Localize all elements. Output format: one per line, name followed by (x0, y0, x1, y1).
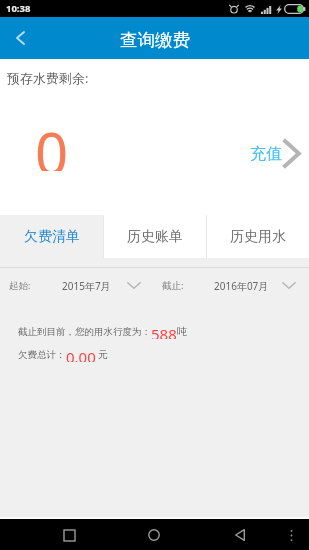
staticText: 截止到目前，您的用水行度为： (18, 326, 151, 338)
staticText: 欠费总计： (18, 349, 66, 361)
staticText: 588 (151, 324, 177, 339)
staticText: 充值 (250, 144, 282, 164)
button[interactable]: Recent apps (54, 520, 84, 550)
staticText: 2015年7月 (62, 279, 111, 293)
staticText: 起始: (9, 279, 31, 292)
staticText: 10:38 (6, 2, 31, 15)
staticText: 历史用水 (230, 228, 286, 246)
staticText: 0.00 (66, 347, 96, 362)
button[interactable]: 充值 (250, 138, 302, 169)
staticText: 截止: (162, 279, 184, 292)
button[interactable]: 历史用水 (206, 215, 309, 258)
button[interactable]: Back (0, 17, 40, 59)
button[interactable]: 2016年07月 (214, 268, 296, 303)
button[interactable]: 欠费清单 (0, 215, 103, 258)
staticText: 吨 (177, 325, 187, 338)
staticText: 元 (98, 348, 108, 361)
staticText: 历史账单 (127, 228, 183, 246)
staticText: 查询缴费 (120, 29, 190, 51)
staticText: 欠费清单 (24, 228, 80, 246)
button[interactable]: 历史账单 (103, 215, 206, 258)
staticText: 0 (35, 113, 69, 171)
button[interactable]: More options (277, 521, 305, 549)
staticText: 2016年07月 (214, 279, 269, 293)
staticText: 预存水费剩余: (7, 69, 89, 87)
button[interactable]: Home (139, 520, 169, 550)
button[interactable]: Back (225, 520, 255, 550)
button[interactable]: 2015年7月 (62, 268, 141, 303)
